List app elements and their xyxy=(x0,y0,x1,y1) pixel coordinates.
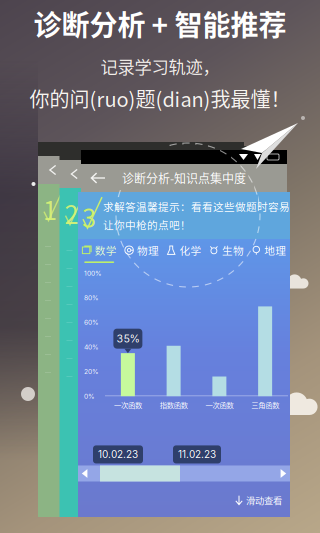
staticText: 诊断分析-知识点集中度 xyxy=(122,169,246,187)
staticText: 80% xyxy=(84,294,99,302)
staticText: 3 xyxy=(82,198,96,235)
staticText: 40% xyxy=(84,343,99,351)
staticText: 10.02.23 xyxy=(98,448,138,460)
staticText: 60% xyxy=(84,318,99,326)
staticText: 诊断分析 + 智能推荐 xyxy=(33,3,286,44)
staticText: 你的问(ruo)题(dian)我最懂！ xyxy=(29,84,290,113)
staticText: 记录学习轨迹， xyxy=(100,54,219,79)
staticText: 求解答温馨提示：看看这些做题时容易 xyxy=(103,199,290,214)
button[interactable]: 生物 xyxy=(205,239,248,265)
staticText: 0% xyxy=(84,392,95,400)
staticText: 100% xyxy=(84,269,102,277)
button[interactable]: 地理 xyxy=(248,239,290,265)
staticText: 生物 xyxy=(222,242,244,258)
staticText: 让你中枪的点吧！ xyxy=(103,217,191,232)
staticText: 2 xyxy=(64,195,78,231)
staticText: 化学 xyxy=(179,242,201,258)
button[interactable]: 物理 xyxy=(120,239,163,265)
staticText: 物理 xyxy=(137,242,159,258)
staticText: 地理 xyxy=(264,242,286,258)
staticText: 20% xyxy=(84,368,99,376)
button[interactable]: Next xyxy=(280,468,290,478)
button[interactable]: Previous xyxy=(78,468,88,478)
button[interactable]: 滑动查看 xyxy=(78,481,290,507)
staticText: 数学 xyxy=(95,242,117,258)
staticText: 1 xyxy=(43,191,57,227)
staticText: 三角函数 xyxy=(251,399,279,410)
button[interactable]: 数学 xyxy=(78,239,120,265)
staticText: 35% xyxy=(116,332,139,345)
button[interactable]: 化学 xyxy=(163,239,205,265)
staticText: 指数函数 xyxy=(160,399,188,410)
staticText: 11.02.23 xyxy=(178,448,216,460)
staticText: 一次函数 xyxy=(205,399,233,410)
staticText: 一次函数 xyxy=(114,399,142,410)
button[interactable]: Back xyxy=(81,164,105,191)
staticText: 滑动查看 xyxy=(246,493,282,507)
